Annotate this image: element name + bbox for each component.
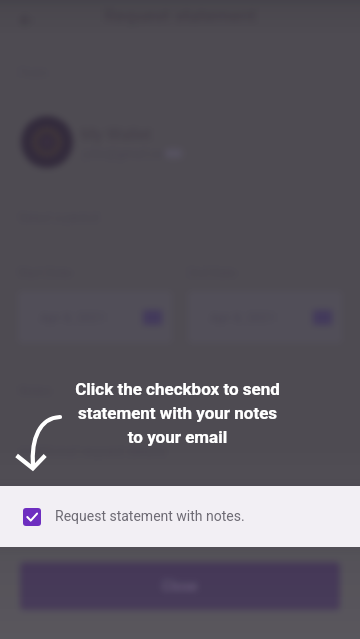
staticText: Click the checkbox to send statement wit… (75, 379, 280, 447)
button[interactable]: Request statement with notes. (0, 486, 360, 547)
staticText: Additional request details (19, 444, 167, 459)
button[interactable]: Close (20, 562, 340, 610)
staticText: Close (162, 578, 198, 594)
staticText: Request statement with notes. (55, 508, 245, 524)
